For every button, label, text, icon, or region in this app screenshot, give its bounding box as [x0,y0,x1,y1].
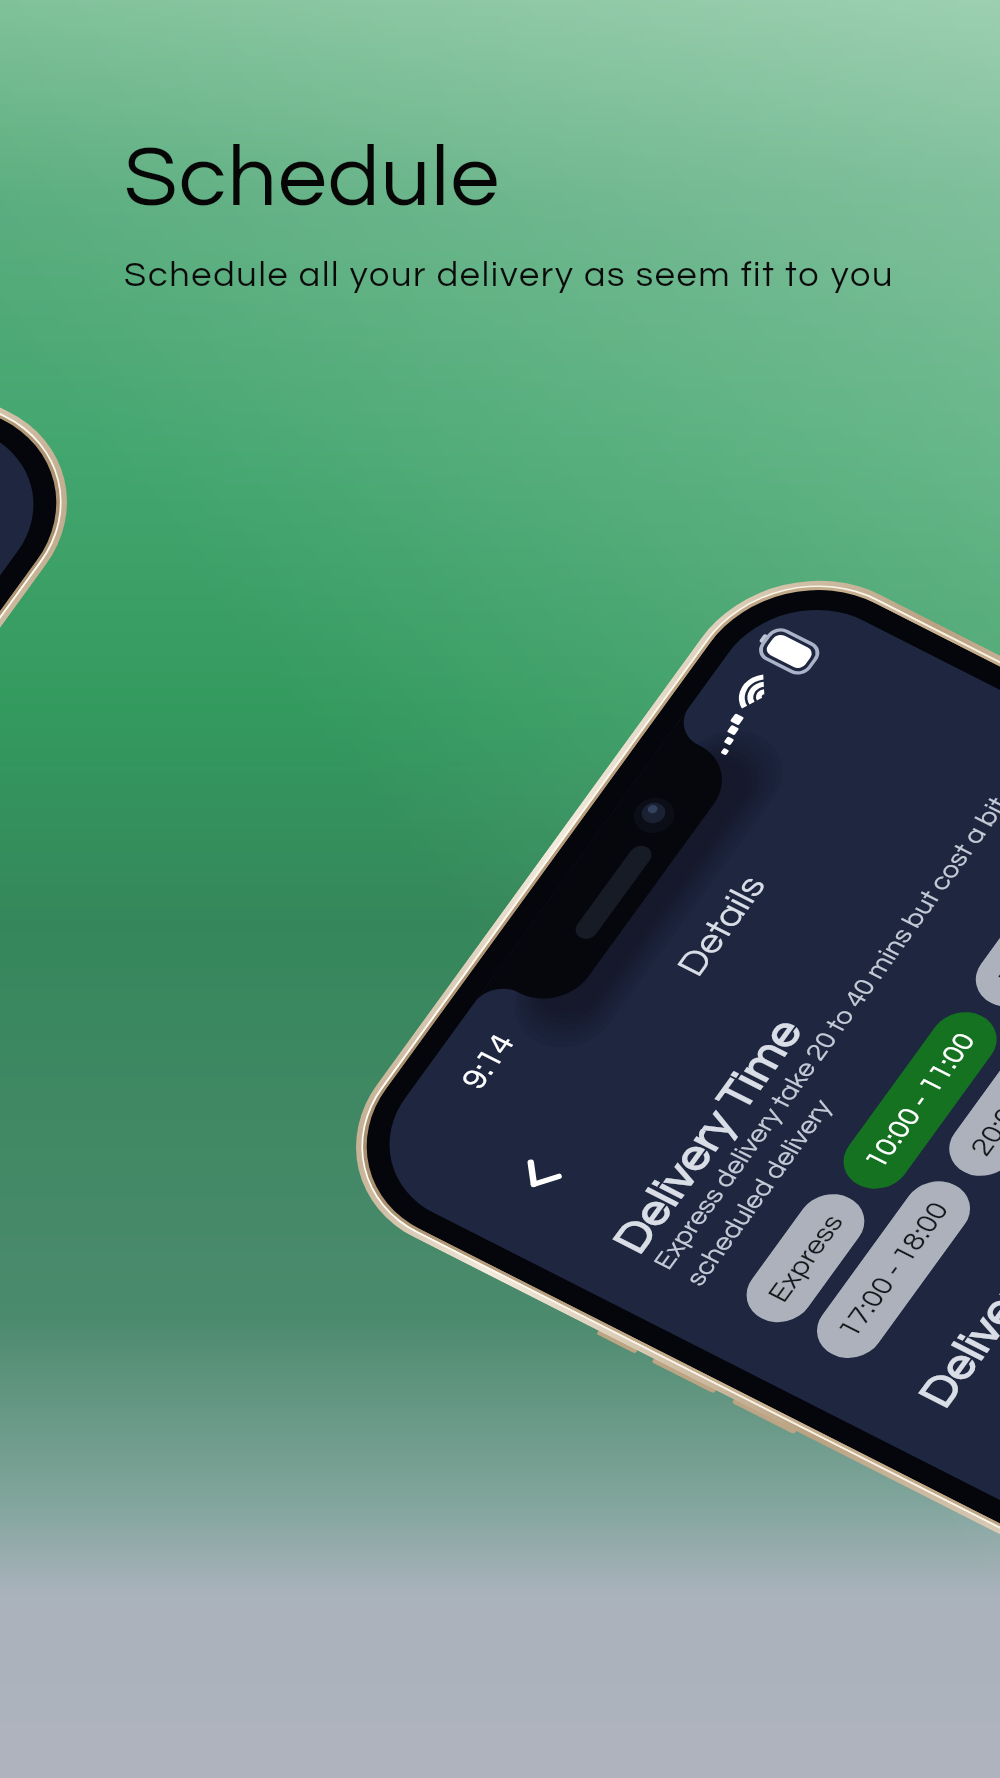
staticText: 12:00 - 13:00 [967,840,1000,997]
staticText: Details [653,863,792,989]
button[interactable]: Express [711,1172,900,1344]
button[interactable]: 20:00 - 21:00 [904,978,1000,1198]
button[interactable]: 17:00 - 18:00 [772,1160,1000,1380]
staticText: Express [747,1205,865,1312]
staticText: Express delivery take 20 to 40 mins but … [546,702,1000,1301]
button[interactable]: 10:00 - 11:00 [799,990,1000,1210]
button[interactable]: Back [482,1123,598,1229]
staticText: Schedule all your delivery as seem fit t… [124,256,895,293]
staticText: Delivery Address [856,1100,1000,1423]
staticText: Delivery Time [562,1003,854,1269]
button[interactable]: 12:00 - 13:00 [931,808,1000,1028]
staticText: 10:00 - 11:00 [834,1023,1000,1179]
staticText: 20:00 - 21:00 [940,1010,1000,1166]
staticText: 9:14 [446,1023,532,1100]
staticText: Schedule [124,134,501,224]
staticText: 17:00 - 18:00 [808,1192,980,1348]
